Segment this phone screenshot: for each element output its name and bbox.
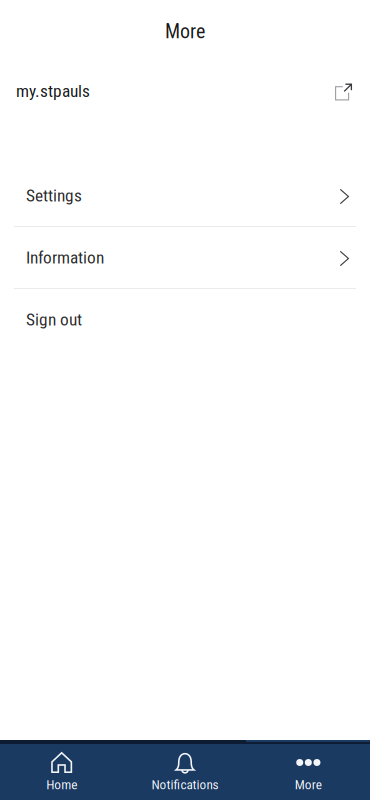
button[interactable]: Settings (0, 165, 370, 226)
staticText: Settings (26, 185, 82, 206)
button[interactable]: More (247, 744, 370, 800)
button[interactable]: Notifications (123, 744, 247, 800)
staticText: Home (46, 777, 77, 793)
staticText: Sign out (26, 309, 82, 330)
staticText: Information (26, 247, 104, 268)
button[interactable]: Open my.stpauls in browser (322, 71, 357, 106)
button[interactable]: Sign out (0, 289, 370, 350)
staticText: my.stpauls (16, 81, 90, 101)
staticText: More (295, 777, 322, 793)
button[interactable]: Home (0, 744, 123, 800)
button[interactable]: Information (0, 227, 370, 288)
staticText: More (165, 20, 205, 43)
staticText: Notifications (151, 777, 218, 793)
